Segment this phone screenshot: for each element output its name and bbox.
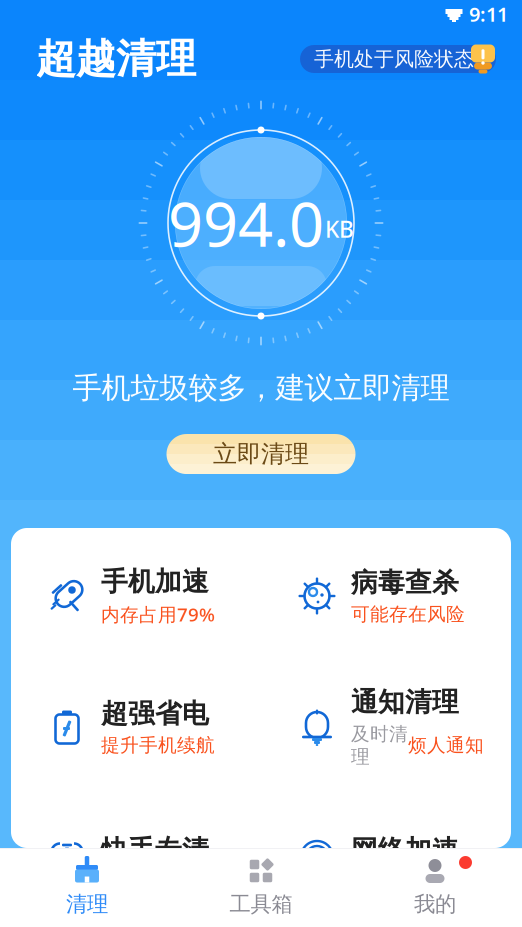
staticText: 我的 xyxy=(414,891,456,917)
staticText: 工具箱 xyxy=(229,891,292,917)
button[interactable]: 快手专清 xyxy=(11,830,261,870)
button[interactable]: 立即清理 xyxy=(166,434,355,474)
button[interactable]: 工具箱 xyxy=(174,848,348,927)
staticText: 立即清理 xyxy=(213,439,309,469)
staticText: KB xyxy=(325,214,354,244)
staticText: 及时清理 xyxy=(351,722,408,768)
button[interactable]: 手机处于风险状态 xyxy=(300,45,500,73)
button[interactable]: 网络加速 xyxy=(261,830,511,870)
staticText: 网络加速 xyxy=(351,834,459,866)
staticText: 手机处于风险状态 xyxy=(314,47,474,71)
staticText: 可能存在风险 xyxy=(351,603,465,626)
staticText: 超越清理 xyxy=(36,34,196,83)
button[interactable]: 我的 xyxy=(348,848,522,927)
button[interactable]: 清理 xyxy=(0,848,174,927)
staticText: 内存占用79% xyxy=(101,602,215,627)
staticText: 超强省电 xyxy=(101,697,209,730)
staticText: 烦人通知 xyxy=(408,734,484,757)
button[interactable]: 通知清理 xyxy=(261,686,511,768)
staticText: 快手专清 xyxy=(101,834,209,866)
staticText: 994.0 xyxy=(168,182,324,264)
button[interactable]: 超强省电 xyxy=(11,697,261,757)
staticText: 9:11 xyxy=(469,1,508,27)
staticText: 手机加速 xyxy=(101,565,209,598)
staticText: 通知清理 xyxy=(351,686,459,718)
staticText: 手机垃圾较多，建议立即清理 xyxy=(72,370,449,406)
button[interactable]: 手机加速 xyxy=(11,565,261,627)
button[interactable]: 病毒查杀 xyxy=(261,566,511,626)
staticText: 清理 xyxy=(66,891,108,917)
staticText: 提升手机续航 xyxy=(101,734,215,757)
staticText: 病毒查杀 xyxy=(351,566,459,599)
